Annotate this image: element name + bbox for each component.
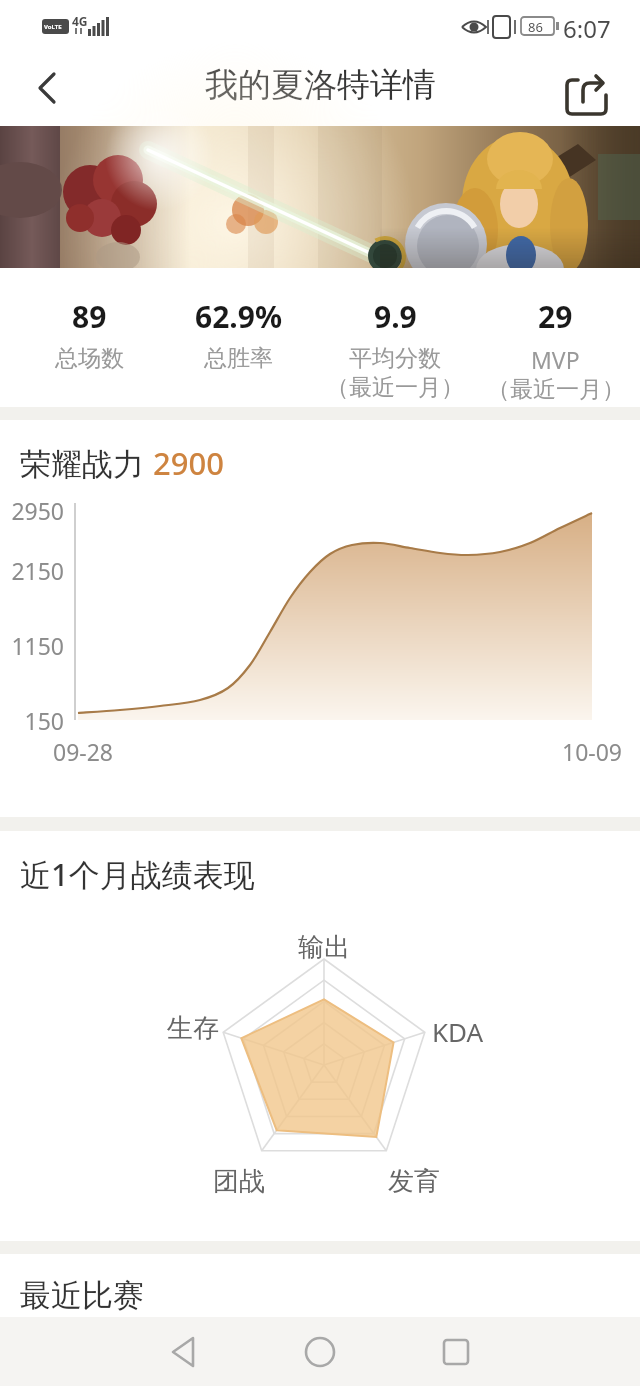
button[interactable]	[154, 1322, 214, 1382]
staticText: 荣耀战力	[20, 442, 153, 484]
button[interactable]	[426, 1322, 486, 1382]
staticText: 10-09	[562, 736, 623, 767]
staticText: VoLTE	[44, 23, 62, 31]
staticText: 6:07	[563, 12, 611, 45]
button[interactable]: 29	[477, 296, 634, 404]
button[interactable]	[24, 66, 68, 110]
staticText: 9.9	[374, 296, 417, 337]
staticText: 29	[538, 296, 573, 337]
button[interactable]	[0, 126, 640, 268]
staticText: 近1个月战绩表现	[20, 853, 255, 895]
button[interactable]	[290, 1322, 350, 1382]
staticText: MVP	[531, 344, 580, 375]
staticText: 我的夏洛特详情	[205, 64, 436, 106]
staticText: 2900	[153, 442, 224, 484]
staticText: 输出	[298, 931, 350, 964]
staticText: 86	[528, 18, 543, 36]
staticText: （最近一月）	[487, 375, 625, 404]
button[interactable]: 9.9	[313, 296, 477, 402]
staticText: 4G	[72, 13, 88, 29]
staticText: 总场数	[55, 344, 124, 373]
staticText: 发育	[388, 1165, 440, 1198]
staticText: 2150	[11, 555, 64, 586]
staticText: （最近一月）	[326, 373, 464, 402]
staticText: 1150	[11, 630, 64, 661]
staticText: 生存	[167, 1012, 219, 1045]
staticText: 平均分数	[349, 344, 441, 373]
button[interactable]	[558, 62, 614, 118]
button[interactable]: 89	[14, 296, 164, 373]
staticText: KDA	[432, 1014, 484, 1049]
staticText: 09-28	[53, 736, 114, 767]
staticText: 2950	[11, 495, 64, 526]
staticText: 150	[24, 705, 64, 736]
staticText: 团战	[213, 1165, 265, 1198]
staticText: 总胜率	[204, 344, 273, 373]
staticText: 最近比赛	[20, 1276, 144, 1315]
staticText: 89	[72, 296, 107, 337]
button[interactable]: 62.9%	[164, 296, 313, 373]
staticText: 62.9%	[195, 296, 282, 337]
